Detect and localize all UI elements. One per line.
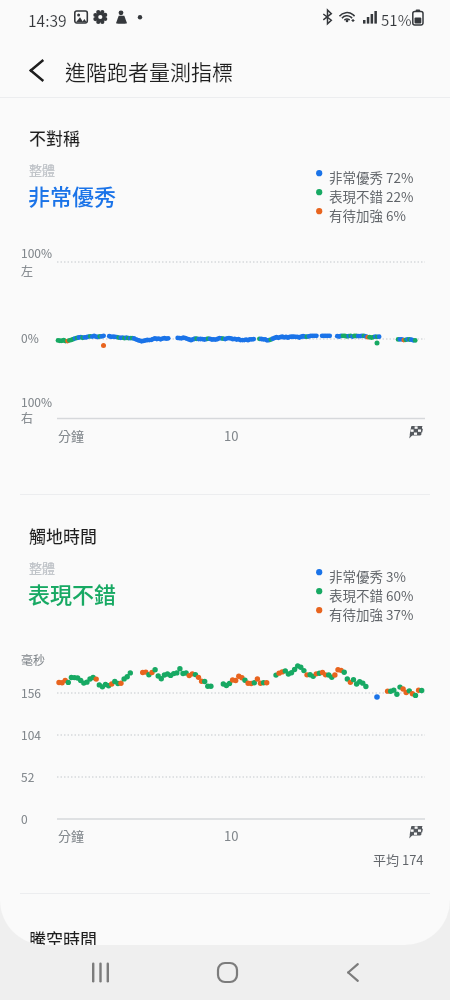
staticText: 騰空時間	[29, 926, 97, 945]
staticText: 分鐘	[58, 826, 85, 845]
staticText: 平均 174	[373, 850, 424, 869]
button[interactable]: Home	[197, 950, 257, 995]
staticText: 0	[21, 810, 28, 827]
staticText: 觸地時間	[29, 523, 97, 548]
staticText: 非常優秀 72%	[329, 167, 414, 187]
staticText: 毫秒	[21, 651, 46, 668]
staticText: 51%	[381, 9, 412, 31]
button[interactable]: Recent apps	[71, 950, 131, 995]
staticText: 表現不錯 22%	[329, 186, 414, 206]
staticText: 52	[21, 768, 35, 785]
staticText: 右	[21, 409, 34, 426]
staticText: 有待加強 37%	[329, 604, 414, 624]
staticText: 左	[21, 262, 34, 279]
staticText: 整體	[29, 558, 56, 577]
staticText: 進階跑者量測指標	[65, 56, 233, 86]
button[interactable]: Back	[10, 44, 63, 97]
staticText: 有待加強 6%	[329, 205, 406, 225]
staticText: 14:39	[28, 9, 67, 31]
staticText: 不對稱	[29, 125, 80, 150]
staticText: 156	[21, 684, 41, 701]
staticText: 100%	[21, 393, 53, 410]
staticText: 表現不錯	[28, 577, 117, 609]
staticText: 10	[224, 426, 239, 445]
staticText: 104	[21, 726, 41, 743]
staticText: 整體	[29, 160, 56, 179]
staticText: 分鐘	[58, 426, 85, 445]
staticText: 非常優秀 3%	[329, 566, 406, 586]
staticText: 表現不錯 60%	[329, 585, 414, 605]
staticText: 100%	[21, 244, 53, 261]
staticText: 0%	[21, 329, 39, 346]
button[interactable]: Back	[323, 950, 383, 995]
staticText: 10	[224, 826, 239, 845]
staticText: 非常優秀	[28, 179, 117, 211]
